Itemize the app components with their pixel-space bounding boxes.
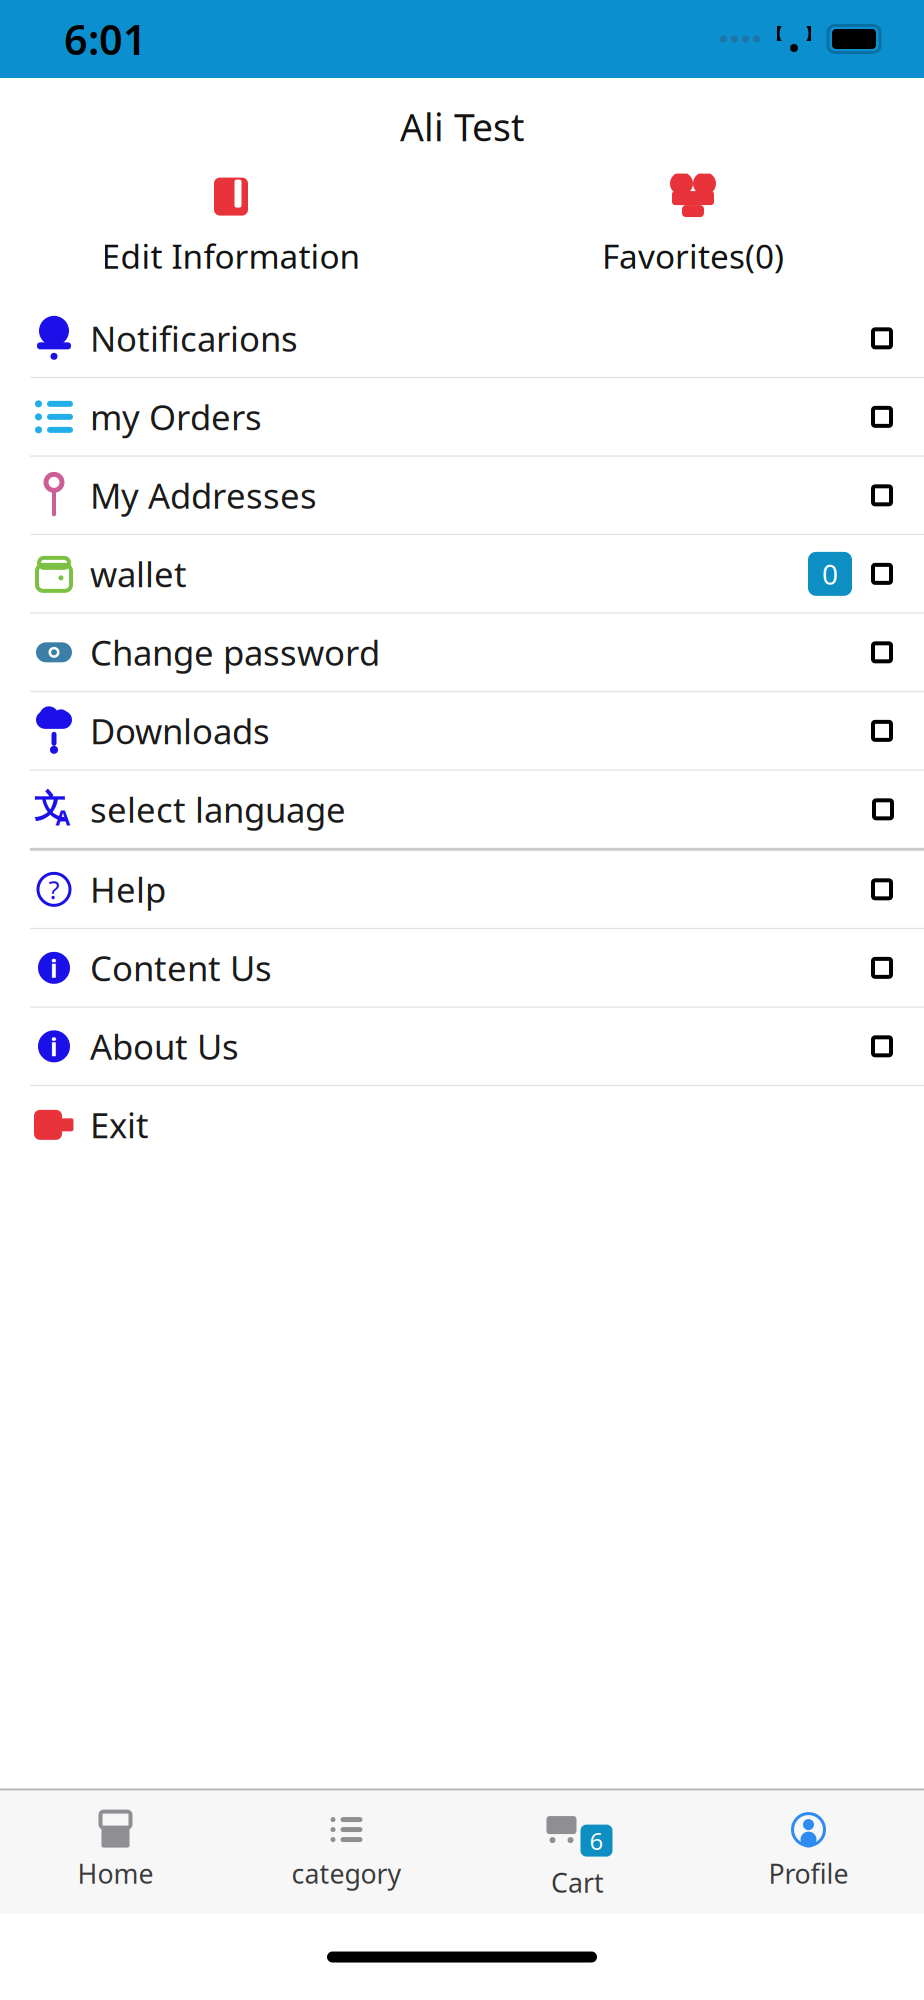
- staticText: A: [55, 803, 70, 831]
- staticText: 0: [822, 555, 838, 592]
- staticText: i: [50, 951, 58, 985]
- staticText: 6: [589, 1825, 603, 1857]
- button[interactable]: wallet: [0, 535, 924, 612]
- button[interactable]: ?: [0, 851, 924, 928]
- button[interactable]: 6: [462, 1791, 693, 1914]
- staticText: Content Us: [90, 945, 272, 991]
- staticText: Cart: [551, 1865, 604, 1900]
- button[interactable]: Edit Information: [0, 170, 462, 282]
- button[interactable]: i: [0, 929, 924, 1006]
- staticText: i: [50, 1029, 58, 1063]
- staticText: Exit: [90, 1102, 149, 1148]
- staticText: Profile: [768, 1856, 848, 1891]
- staticText: wallet: [90, 551, 187, 597]
- staticText: Home: [77, 1856, 153, 1891]
- button[interactable]: category: [231, 1800, 462, 1905]
- button[interactable]: My Addresses: [0, 457, 924, 534]
- staticText: Edit Information: [101, 234, 360, 278]
- staticText: Favorites(0): [602, 234, 784, 278]
- staticText: Downloads: [90, 708, 270, 754]
- staticText: Help: [90, 866, 166, 912]
- button[interactable]: my Orders: [0, 378, 924, 455]
- button[interactable]: Exit: [0, 1086, 924, 1163]
- button[interactable]: i: [0, 1008, 924, 1085]
- staticText: my Orders: [90, 394, 262, 440]
- staticText: My Addresses: [90, 472, 317, 518]
- button[interactable]: Downloads: [0, 692, 924, 769]
- button[interactable]: 文: [0, 771, 924, 848]
- staticText: category: [291, 1856, 401, 1891]
- staticText: Change password: [90, 629, 380, 675]
- staticText: 6:01: [64, 12, 147, 66]
- staticText: 文: [34, 787, 66, 826]
- staticText: Notificarions: [90, 315, 298, 361]
- button[interactable]: Profile: [693, 1800, 924, 1905]
- button[interactable]: Home: [0, 1800, 231, 1905]
- staticText: select language: [90, 786, 346, 832]
- staticText: About Us: [90, 1023, 239, 1069]
- button[interactable]: Change password: [0, 614, 924, 691]
- staticText: ?: [48, 872, 59, 906]
- button[interactable]: Notificarions: [0, 300, 924, 377]
- staticText: Ali Test: [400, 102, 524, 152]
- button[interactable]: Favorites(0): [462, 170, 924, 282]
